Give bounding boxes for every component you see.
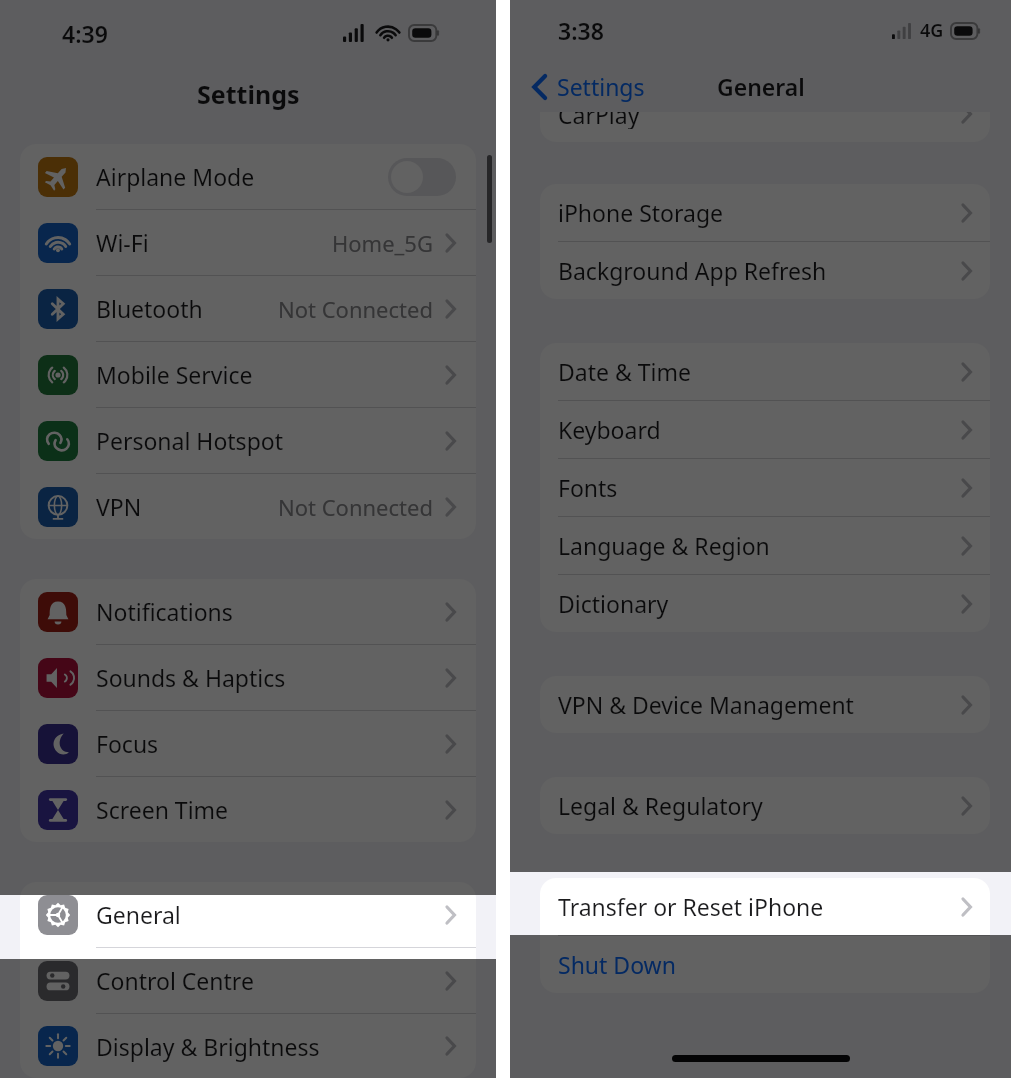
button[interactable]: Airplane Mode [20,144,476,209]
staticText: Shut Down [558,949,676,980]
button[interactable]: Background App Refresh [540,242,990,299]
staticText: 4:39 [62,18,108,49]
staticText: Control Centre [96,965,254,996]
button[interactable]: VPN [20,474,476,539]
staticText: Screen Time [96,794,229,825]
staticText: Not Connected [278,294,433,324]
button[interactable]: VPN & Device Management [540,676,990,733]
button[interactable]: Personal Hotspot [20,408,476,473]
staticText: Keyboard [558,414,661,445]
staticText: Transfer or Reset iPhone [558,891,824,922]
staticText: Dictionary [558,588,669,619]
staticText: Background App Refresh [558,255,827,286]
staticText: Wi-Fi [96,227,149,258]
staticText: VPN [96,491,142,522]
button[interactable]: Screen Time [20,777,476,842]
staticText: Language & Region [558,530,770,561]
staticText: Display & Brightness [96,1031,320,1062]
staticText: General [96,899,181,930]
button[interactable]: Keyboard [540,401,990,458]
staticText: 4G [920,18,944,43]
staticText: Focus [96,728,159,759]
staticText: Mobile Service [96,359,253,390]
staticText: General [717,71,805,102]
button[interactable]: Language & Region [540,517,990,574]
button[interactable]: Control Centre [20,948,476,1013]
button[interactable]: Settings [528,67,649,106]
button[interactable]: iPhone Storage [540,184,990,241]
button[interactable]: Dictionary [540,575,990,632]
staticText: Fonts [558,472,618,503]
staticText: iPhone Storage [558,197,724,228]
staticText: Notifications [96,596,233,627]
staticText: Legal & Regulatory [558,790,763,821]
staticText: Home_5G [332,228,433,258]
button[interactable] [388,158,456,196]
staticText: Settings [557,71,645,102]
staticText: Personal Hotspot [96,425,283,456]
button[interactable]: Bluetooth [20,276,476,341]
staticText: 3:38 [558,15,604,46]
button[interactable]: Display & Brightness [20,1014,476,1078]
staticText: CarPlay [558,112,640,129]
staticText: Not Connected [278,492,433,522]
button[interactable]: General [20,882,476,947]
button[interactable]: Wi-Fi [20,210,476,275]
staticText: Bluetooth [96,293,203,324]
button[interactable]: Date & Time [540,343,990,400]
button[interactable]: Shut Down [540,936,990,993]
staticText: Airplane Mode [96,161,255,192]
button[interactable]: Legal & Regulatory [540,777,990,834]
staticText: Settings [197,77,300,111]
button[interactable]: Notifications [20,579,476,644]
button[interactable]: Mobile Service [20,342,476,407]
button[interactable]: Transfer or Reset iPhone [540,878,990,935]
staticText: Sounds & Haptics [96,662,286,693]
staticText: VPN & Device Management [558,689,854,720]
button[interactable]: CarPlay [540,112,990,142]
staticText: Date & Time [558,356,691,387]
button[interactable]: Focus [20,711,476,776]
button[interactable]: Sounds & Haptics [20,645,476,710]
button[interactable]: Fonts [540,459,990,516]
